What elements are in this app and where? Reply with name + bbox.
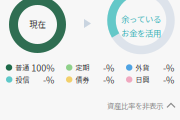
button[interactable]: 債券 bbox=[66, 74, 114, 85]
staticText: 余っている bbox=[121, 13, 161, 25]
staticText: 投信 bbox=[15, 74, 29, 84]
staticText: -% bbox=[103, 73, 114, 86]
staticText: 資産比率を非表示 bbox=[107, 100, 163, 111]
staticText: 現在 bbox=[29, 18, 45, 30]
staticText: 普通 bbox=[15, 62, 29, 72]
button[interactable]: 普通 bbox=[6, 62, 54, 73]
staticText: お金を活用 bbox=[121, 27, 161, 39]
button[interactable]: 日興 bbox=[126, 74, 174, 85]
staticText: -% bbox=[103, 61, 114, 74]
button[interactable]: 投信 bbox=[6, 74, 54, 85]
staticText: 100% bbox=[31, 61, 54, 74]
staticText: 債券 bbox=[75, 74, 89, 84]
staticText: -% bbox=[163, 73, 174, 86]
button[interactable]: 定期 bbox=[66, 62, 114, 73]
button[interactable]: 外貨 bbox=[126, 62, 174, 73]
staticText: 定期 bbox=[75, 62, 89, 72]
staticText: 外貨 bbox=[135, 62, 149, 72]
staticText: 日興 bbox=[135, 74, 149, 84]
button[interactable]: 資産比率を非表示 bbox=[107, 100, 175, 111]
staticText: -% bbox=[43, 73, 54, 86]
staticText: -% bbox=[163, 61, 174, 74]
